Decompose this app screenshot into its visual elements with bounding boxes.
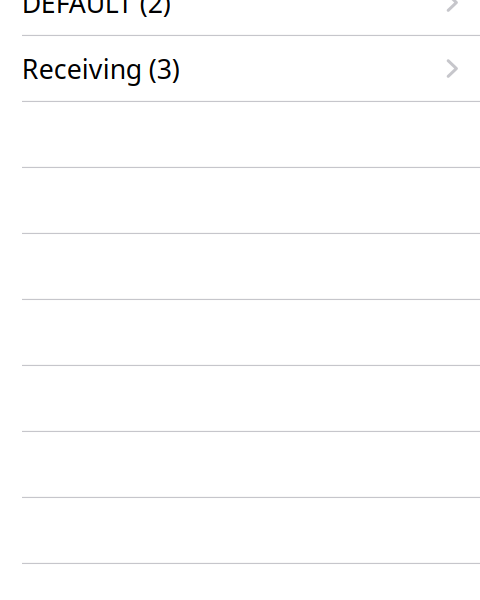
staticText: Receiving (3) xyxy=(22,51,180,86)
staticText: DEFAULT (2) xyxy=(22,0,171,20)
button[interactable]: Receiving (3) xyxy=(0,36,480,101)
button[interactable]: DEFAULT (2) xyxy=(0,0,480,35)
